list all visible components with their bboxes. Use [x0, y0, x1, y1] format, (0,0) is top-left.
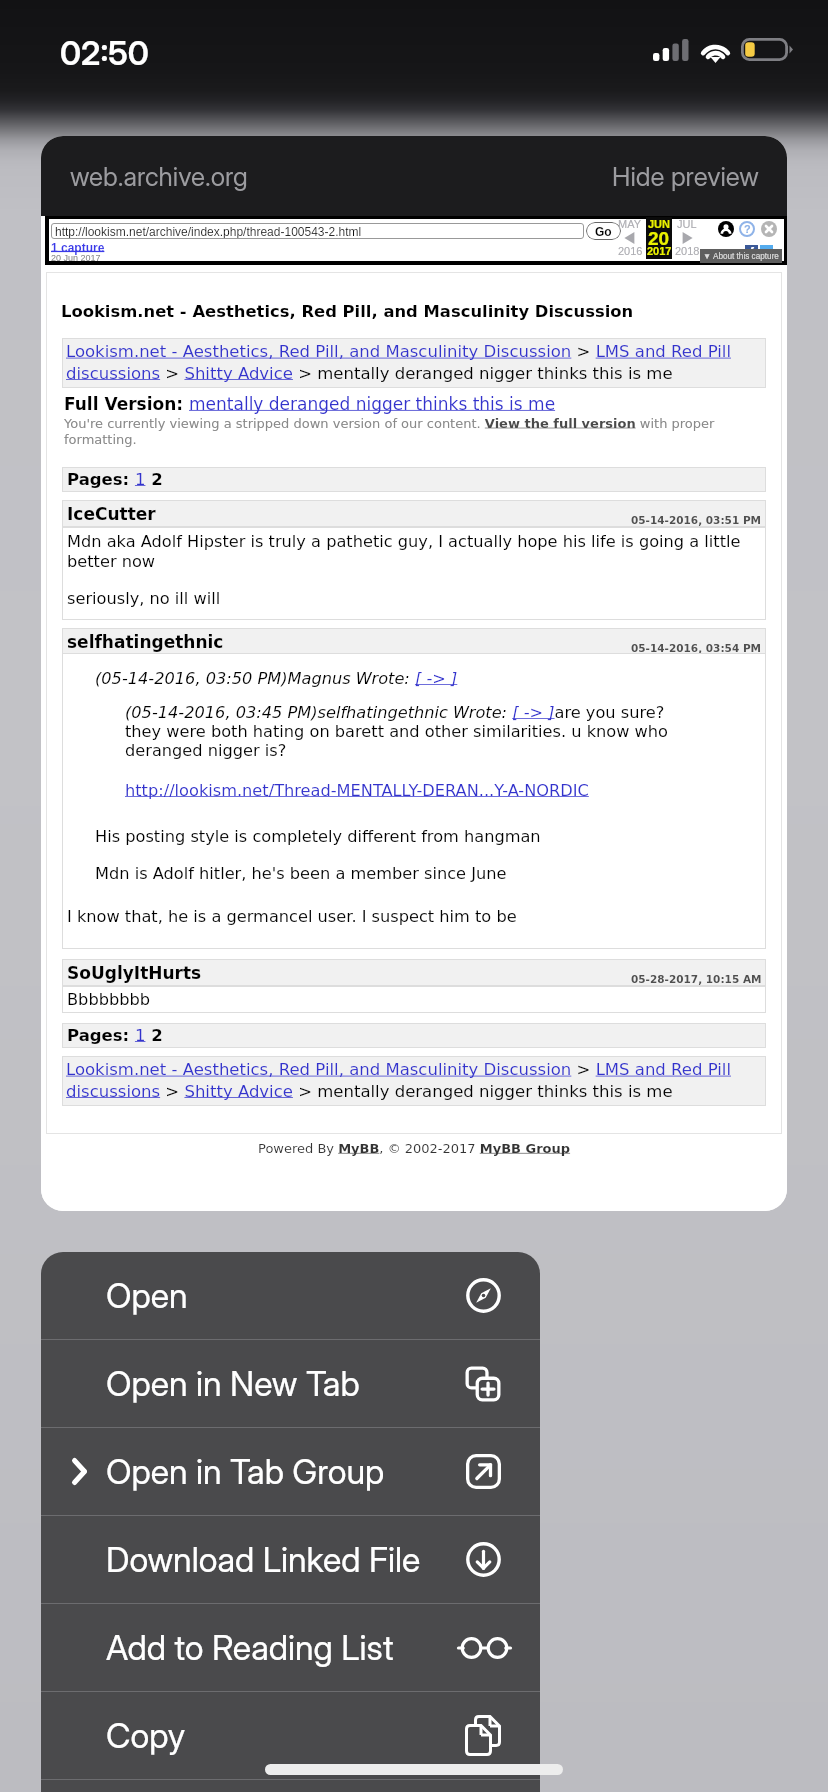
- staticText: JUL: [677, 218, 697, 230]
- staticText: web.archive.org: [70, 161, 248, 192]
- staticText: http://lookism.net/archive/index.php/thr…: [55, 225, 362, 238]
- staticText: (05-14-2016, 03:50 PM)Magnus Wrote: [ ->…: [95, 669, 458, 688]
- staticText: f: [750, 245, 754, 258]
- other: Add to Reading List: [458, 1636, 511, 1660]
- staticText: Lookism.net - Aesthetics, Red Pill, and …: [61, 302, 634, 321]
- staticText: ▼ About this capture: [703, 252, 779, 261]
- staticText: His posting style is completely differen…: [95, 827, 541, 846]
- staticText: IceCutter: [67, 504, 156, 524]
- staticText: 2017: [647, 245, 672, 257]
- staticText: 05-14-2016, 03:54 PM: [631, 642, 762, 654]
- staticText: 20 Jun 2017: [51, 253, 101, 263]
- staticText: Pages: 1 2: [67, 1026, 163, 1045]
- other: Open in New Tab: [465, 1366, 501, 1402]
- staticText: I know that, he is a germancel user. I s…: [67, 907, 517, 926]
- other: Copy: [465, 1715, 501, 1756]
- staticText: 2016: [618, 245, 643, 257]
- staticText: 05-14-2016, 03:51 PM: [631, 514, 762, 526]
- staticText: Mdn aka Adolf Hipster is truly a patheti…: [67, 532, 761, 570]
- staticText: ?: [744, 223, 751, 235]
- button[interactable]: ▼ About this capture: [700, 249, 782, 263]
- button[interactable]: Open in New Tab: [41, 1340, 540, 1427]
- staticText: 05-28-2017, 10:15 AM: [631, 973, 762, 985]
- staticText: Add to Reading List: [106, 1627, 394, 1668]
- staticText: Copy: [106, 1715, 186, 1756]
- staticText: selfhatingethnic: [67, 632, 224, 652]
- staticText: Pages: 1 2: [67, 470, 163, 489]
- staticText: MAY: [618, 218, 642, 230]
- staticText: 2018: [675, 245, 700, 257]
- staticText: You're currently viewing a stripped down…: [64, 416, 724, 447]
- other: Open: [466, 1278, 501, 1313]
- button[interactable]: Lookism.net - Aesthetics, Red Pill, and …: [62, 1056, 766, 1106]
- staticText: Bbbbbbbb: [67, 990, 151, 1009]
- staticText: Download Linked File: [106, 1539, 421, 1580]
- staticText: Powered By MyBB, © 2002-2017 MyBB Group: [258, 1141, 571, 1156]
- staticText: 20: [648, 228, 670, 249]
- staticText: Go: [595, 225, 612, 238]
- staticText: Hide preview: [612, 161, 759, 192]
- staticText: 02:50: [60, 33, 149, 73]
- staticText: Open: [106, 1275, 188, 1316]
- staticText: Mdn is Adolf hitler, he's been a member …: [95, 864, 507, 883]
- staticText: seriously, no ill will: [67, 589, 221, 608]
- other: Open in Tab Group: [466, 1454, 501, 1489]
- staticText: (05-14-2016, 03:45 PM)selfhatingethnic W…: [125, 703, 690, 760]
- button[interactable]: 1 capture: [51, 241, 105, 254]
- button[interactable]: Lookism.net - Aesthetics, Red Pill, and …: [62, 338, 766, 388]
- button[interactable]: Download Linked File: [41, 1516, 540, 1603]
- staticText: Lookism.net - Aesthetics, Red Pill, and …: [66, 1060, 762, 1101]
- staticText: Full Version: mentally deranged nigger t…: [64, 394, 556, 414]
- staticText: JUN: [648, 218, 671, 230]
- staticText: Lookism.net - Aesthetics, Red Pill, and …: [66, 342, 762, 383]
- staticText: Open in New Tab: [106, 1363, 360, 1404]
- button[interactable]: Copy: [41, 1692, 540, 1779]
- staticText: Open in Tab Group: [106, 1451, 385, 1492]
- button[interactable]: Open in Tab Group: [41, 1428, 540, 1515]
- staticText: http://lookism.net/Thread-MENTALLY-DERAN…: [125, 781, 589, 800]
- button[interactable]: Go: [586, 222, 621, 240]
- button[interactable]: Open: [41, 1252, 540, 1339]
- staticText: SoUglyItHurts: [67, 963, 202, 983]
- button[interactable]: Add to Reading List: [41, 1604, 540, 1691]
- other: Download Linked File: [466, 1542, 501, 1577]
- button[interactable]: Hide preview: [584, 143, 787, 210]
